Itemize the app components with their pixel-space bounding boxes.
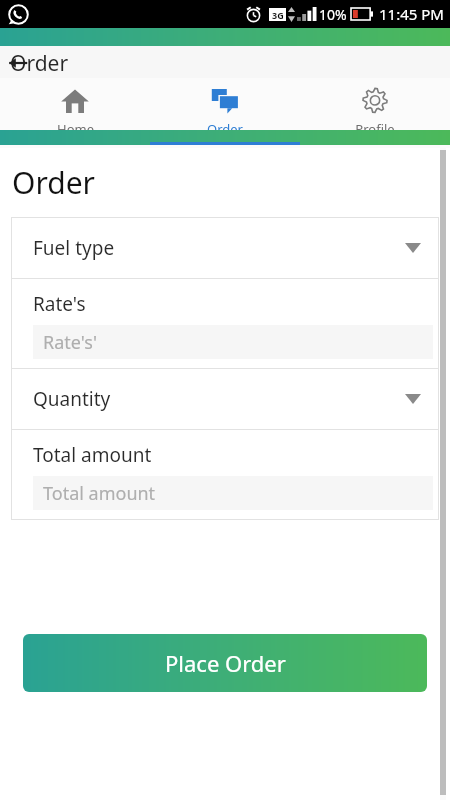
staticText: Order bbox=[12, 162, 95, 203]
button[interactable]: Total amount bbox=[11, 430, 439, 519]
staticText: Quantity bbox=[33, 386, 111, 412]
staticText: Profile bbox=[355, 120, 395, 138]
staticText: Fuel type bbox=[33, 235, 115, 261]
staticText: Order bbox=[207, 120, 243, 138]
staticText: 3G bbox=[272, 9, 284, 21]
staticText: 10% bbox=[319, 5, 347, 24]
button[interactable]: Back bbox=[7, 52, 29, 74]
staticText: Order bbox=[10, 49, 69, 78]
staticText: Home bbox=[57, 120, 94, 138]
button[interactable]: Rate's bbox=[11, 279, 439, 368]
button[interactable]: Place Order bbox=[23, 634, 427, 692]
staticText: Rate's' bbox=[43, 330, 97, 355]
staticText: 11:45 PM bbox=[379, 4, 444, 24]
staticText: Place Order bbox=[165, 648, 286, 678]
staticText: Total amount bbox=[43, 481, 156, 506]
button[interactable]: Profile bbox=[300, 78, 450, 138]
button[interactable]: Quantity bbox=[11, 369, 439, 429]
staticText: Rate's bbox=[33, 291, 86, 317]
button[interactable]: Order bbox=[150, 78, 300, 138]
button[interactable]: Home bbox=[0, 78, 150, 138]
staticText: Total amount bbox=[33, 442, 152, 468]
button[interactable]: Fuel type bbox=[11, 218, 439, 278]
